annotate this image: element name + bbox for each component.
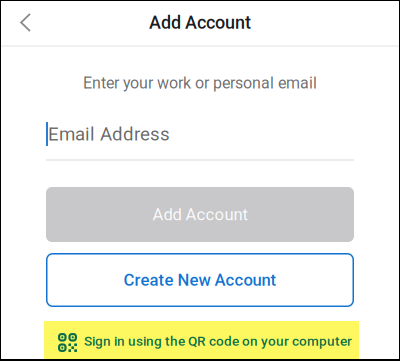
staticText: Add Account: [149, 12, 251, 33]
button[interactable]: Sign in using the QR code on your comput…: [44, 321, 359, 361]
staticText: Enter your work or personal email: [83, 74, 317, 92]
staticText: Sign in using the QR code on your comput…: [84, 333, 352, 349]
staticText: Create New Account: [123, 270, 276, 290]
button[interactable]: Email Address: [46, 122, 354, 161]
staticText: Email Address: [48, 123, 170, 145]
button[interactable]: Create New Account: [46, 253, 354, 307]
button[interactable]: Back: [0, 0, 44, 45]
staticText: Add Account: [152, 205, 247, 224]
button[interactable]: Add Account: [46, 187, 354, 242]
